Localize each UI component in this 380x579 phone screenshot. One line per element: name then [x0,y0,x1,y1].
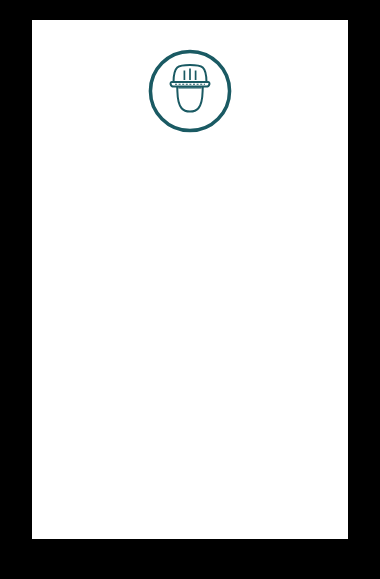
button[interactable]: Safety helmet logo [148,49,232,133]
